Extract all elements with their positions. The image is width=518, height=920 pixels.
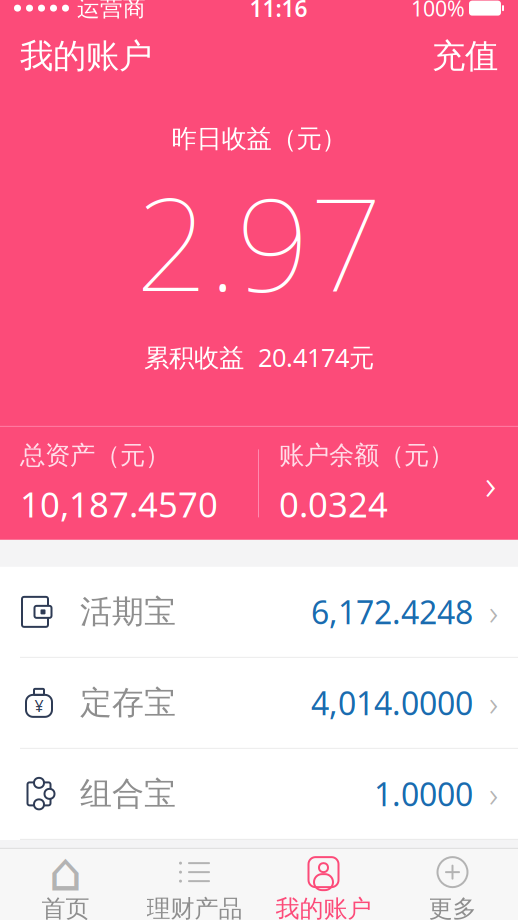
button[interactable]: 我的账户	[259, 849, 388, 920]
button[interactable]: 组合宝	[0, 749, 518, 839]
staticText: 充值	[432, 36, 498, 77]
staticText: 1.0000	[374, 773, 473, 815]
staticText: 累积收益 20.4174元	[144, 340, 374, 374]
staticText: 我的账户	[20, 36, 152, 77]
staticText: ¥	[34, 695, 43, 716]
button[interactable]: 我的账户	[0, 24, 172, 89]
staticText: 总资产（元）	[20, 440, 170, 471]
staticText: 6,172.4248	[311, 591, 473, 633]
staticText: ›	[489, 589, 498, 635]
staticText: ›	[489, 680, 498, 726]
staticText: 4,014.0000	[311, 682, 473, 724]
staticText: 昨日收益（元）	[171, 123, 346, 154]
staticText: 0.0324	[279, 481, 388, 527]
staticText: 100%	[411, 0, 465, 22]
button[interactable]: ¥	[0, 658, 518, 748]
staticText: 2.97	[135, 156, 382, 326]
button[interactable]: ⌂	[1, 849, 130, 920]
staticText: ›	[485, 455, 496, 512]
staticText: 我的账户	[275, 894, 371, 920]
staticText: 首页	[41, 894, 89, 920]
staticText: ⌂	[48, 842, 82, 902]
staticText: 10,187.4570	[20, 481, 218, 527]
staticText: 账户余额（元）	[279, 440, 454, 471]
staticText: 组合宝	[80, 774, 176, 813]
button[interactable]: 理财产品	[130, 849, 259, 920]
button[interactable]: 活期宝	[0, 567, 518, 657]
button[interactable]: 总资产（元）	[0, 427, 518, 540]
staticText: 运营商	[77, 0, 146, 22]
staticText: 活期宝	[80, 592, 176, 631]
staticText: ›	[489, 771, 498, 817]
staticText: 更多	[428, 894, 476, 920]
staticText: 理财产品	[146, 894, 242, 920]
staticText: 定存宝	[80, 683, 176, 722]
button[interactable]: 充值	[412, 24, 518, 89]
button[interactable]: 更多	[388, 849, 517, 920]
staticText: 11:16	[249, 0, 307, 23]
